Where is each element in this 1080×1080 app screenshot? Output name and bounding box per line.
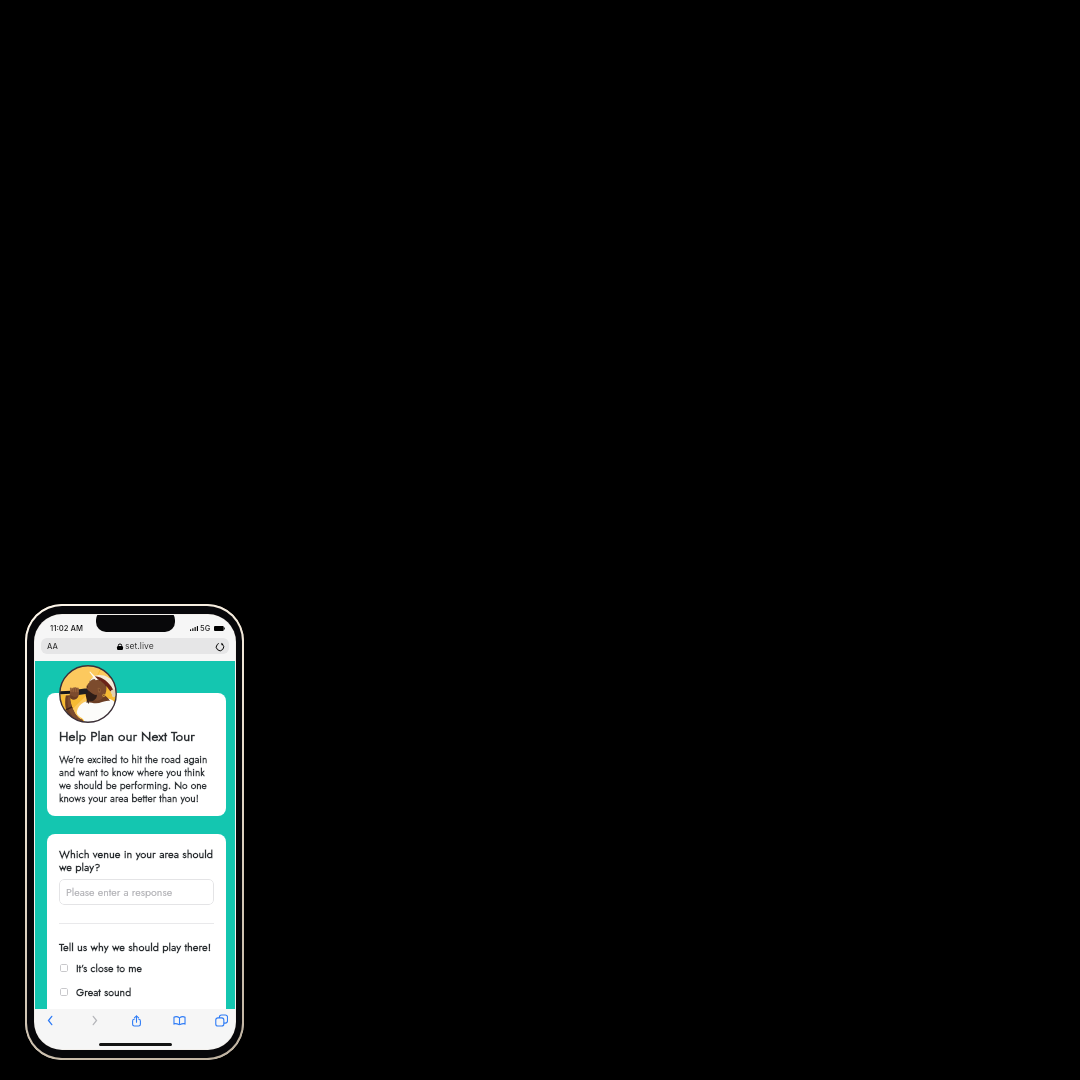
- staticText: set.live: [125, 641, 154, 651]
- button[interactable]: Great sound: [59, 985, 214, 999]
- button[interactable]: Tabs: [208, 1008, 234, 1032]
- staticText: It’s close to me: [76, 961, 142, 975]
- button[interactable]: It’s close to me: [59, 961, 214, 975]
- button[interactable]: Please enter a response: [59, 879, 214, 905]
- button[interactable]: Back: [37, 1008, 63, 1032]
- staticText: We’re excited to hit the road again and …: [59, 752, 208, 806]
- staticText: Which venue in your area should we play?: [59, 846, 215, 875]
- staticText: 5G: [200, 624, 211, 633]
- staticText: Tell us why we should play there!: [59, 939, 215, 955]
- button[interactable]: Reload page: [214, 641, 225, 652]
- button[interactable]: Bookmarks: [166, 1008, 192, 1032]
- staticText: AA: [47, 642, 58, 651]
- button[interactable]: AA: [41, 638, 229, 654]
- button[interactable]: Forward: [81, 1008, 107, 1032]
- staticText: Please enter a response: [66, 885, 173, 900]
- button[interactable]: Share: [123, 1008, 149, 1032]
- staticText: 11:02 AM: [50, 624, 84, 633]
- staticText: Help Plan our Next Tour: [59, 727, 195, 746]
- staticText: Great sound: [76, 985, 132, 999]
